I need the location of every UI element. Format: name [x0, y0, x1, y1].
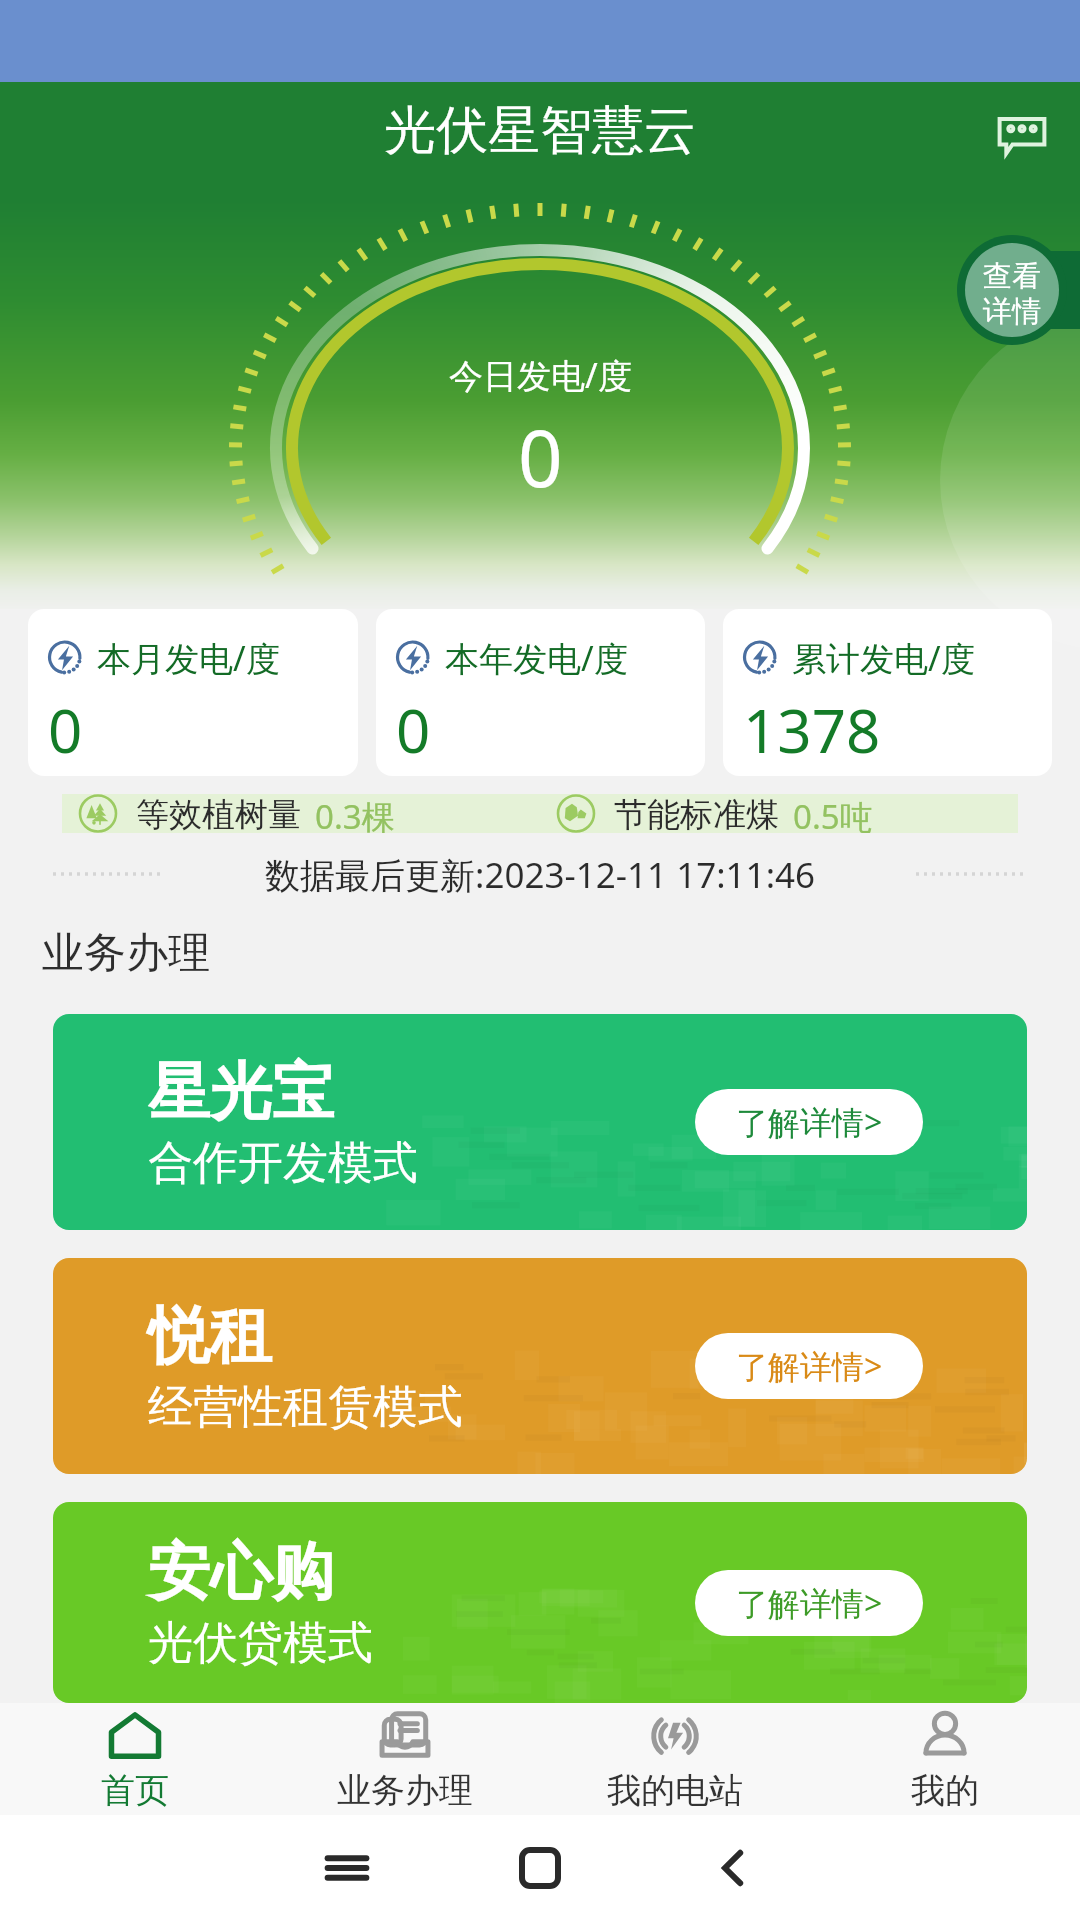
staticText: 0: [396, 689, 431, 771]
staticText: 1378: [743, 689, 881, 771]
staticText: 光伏星智慧云: [384, 98, 696, 164]
button[interactable]: 悦租: [53, 1258, 1027, 1474]
button[interactable]: 了解详情>: [695, 1570, 923, 1636]
staticText: 我的电站: [607, 1769, 743, 1812]
staticText: 合作开发模式: [148, 1135, 418, 1192]
button[interactable]: 我的电站: [540, 1703, 810, 1815]
staticText: 累计发电/度: [792, 635, 975, 681]
button[interactable]: 我的: [810, 1703, 1080, 1815]
button[interactable]: 首页: [0, 1703, 270, 1815]
staticText: 经营性租赁模式: [148, 1379, 463, 1436]
staticText: 0: [518, 404, 563, 510]
staticText: 本年发电/度: [445, 635, 628, 681]
button[interactable]: 安心购: [53, 1502, 1027, 1703]
staticText: 光伏贷模式: [148, 1615, 373, 1672]
staticText: 今日发电/度: [449, 352, 632, 398]
staticText: 悦租: [148, 1297, 272, 1375]
staticText: 了解详情>: [736, 1100, 883, 1144]
staticText: 安心购: [148, 1533, 334, 1611]
button[interactable]: 累计发电/度: [723, 609, 1052, 776]
staticText: 星光宝: [148, 1053, 334, 1131]
staticText: 我的: [911, 1769, 979, 1812]
button[interactable]: 了解详情>: [695, 1333, 923, 1399]
button[interactable]: 业务办理: [270, 1703, 540, 1815]
staticText: 0.3棵: [315, 794, 395, 833]
button[interactable]: 本年发电/度: [376, 609, 705, 776]
staticText: 了解详情>: [736, 1581, 883, 1625]
staticText: 等效植树量: [136, 794, 301, 833]
staticText: 节能标准煤: [614, 794, 779, 833]
staticText: 查看 详情: [983, 258, 1041, 330]
button[interactable]: 查看 详情: [942, 235, 1080, 345]
staticText: 0: [48, 689, 83, 771]
button[interactable]: 本月发电/度: [28, 609, 358, 776]
staticText: 业务办理: [337, 1769, 473, 1812]
button[interactable]: 了解详情>: [695, 1089, 923, 1155]
button[interactable]: 星光宝: [53, 1014, 1027, 1230]
staticText: 业务办理: [42, 927, 210, 980]
staticText: 了解详情>: [736, 1344, 883, 1388]
staticText: 首页: [101, 1769, 169, 1812]
staticText: 本月发电/度: [97, 635, 280, 681]
button[interactable]: Messages: [990, 99, 1054, 163]
staticText: 0.5吨: [793, 794, 873, 833]
staticText: 数据最后更新:2023-12-11 17:11:46: [265, 851, 816, 897]
